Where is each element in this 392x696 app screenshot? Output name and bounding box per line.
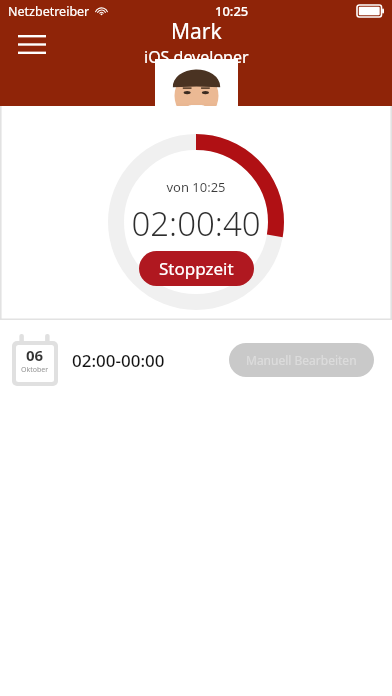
button[interactable]: Profile photo [155,59,238,139]
staticText: 10:25 [215,2,249,20]
staticText: Oktober [21,365,49,375]
staticText: Stoppzeit [159,257,234,280]
staticText: 06 [26,345,44,365]
staticText: Mark [171,17,222,46]
staticText: 02:00-00:00 [72,349,165,372]
staticText: Netzbetreiber [8,3,90,20]
button[interactable]: Stoppzeit [139,251,254,286]
staticText: 02:00:40 [131,201,261,246]
staticText: von 10:25 [166,178,226,196]
staticText: iOS developer [144,46,249,68]
button[interactable]: Menu [10,22,54,66]
staticText: Lindenvalley [161,68,232,84]
staticText: Manuell Bearbeiten [246,352,357,368]
button[interactable]: Manuell Bearbeiten [229,343,374,377]
